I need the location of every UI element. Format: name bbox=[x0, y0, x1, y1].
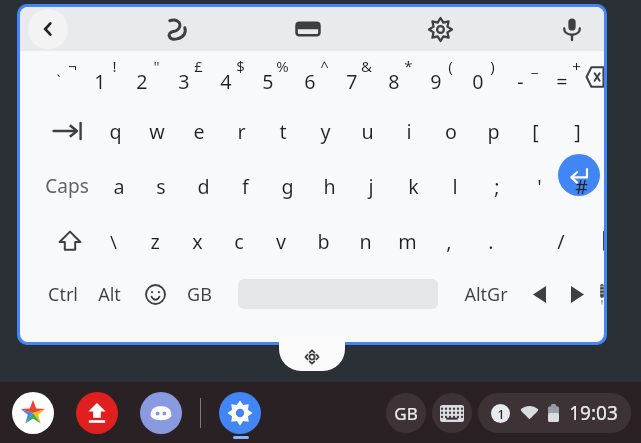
staticText: q bbox=[109, 118, 122, 145]
button[interactable]: Discord bbox=[140, 392, 182, 434]
staticText: u bbox=[361, 118, 374, 145]
button[interactable]: g bbox=[266, 159, 308, 213]
staticText: # bbox=[575, 173, 588, 200]
button[interactable]: Settings app bbox=[219, 392, 261, 434]
button[interactable]: ; bbox=[476, 159, 518, 213]
button[interactable]: Left bbox=[522, 277, 556, 311]
staticText: l bbox=[452, 173, 458, 200]
button[interactable]: ] bbox=[556, 103, 598, 159]
button[interactable]: Hide keyboard bbox=[600, 274, 604, 314]
button[interactable]: ) bbox=[460, 51, 502, 103]
button[interactable]: z bbox=[134, 213, 176, 269]
button[interactable]: Emoji bbox=[135, 274, 175, 314]
button[interactable]: Alt bbox=[94, 274, 125, 314]
button[interactable]: l bbox=[434, 159, 476, 213]
staticText: y bbox=[320, 118, 331, 145]
button[interactable]: ! bbox=[82, 51, 124, 103]
staticText: w bbox=[149, 118, 165, 145]
button[interactable]: q bbox=[94, 103, 136, 159]
button[interactable]: Settings bbox=[418, 7, 462, 51]
button[interactable]: w bbox=[136, 103, 178, 159]
button[interactable]: , bbox=[428, 213, 470, 269]
button[interactable]: Enter bbox=[558, 154, 600, 196]
button[interactable]: * bbox=[376, 51, 418, 103]
button[interactable]: Move keyboard bbox=[279, 337, 345, 371]
button[interactable]: Back bbox=[28, 9, 68, 49]
button[interactable]: o bbox=[430, 103, 472, 159]
staticText: + bbox=[572, 56, 581, 76]
staticText: Alt bbox=[98, 282, 121, 307]
button[interactable]: b bbox=[302, 213, 344, 269]
button[interactable]: i bbox=[388, 103, 430, 159]
button[interactable]: Backspace bbox=[586, 51, 604, 103]
button[interactable]: ( bbox=[418, 51, 460, 103]
button[interactable]: Right bbox=[560, 277, 594, 311]
button[interactable]: # bbox=[560, 159, 602, 213]
button[interactable]: & bbox=[334, 51, 376, 103]
staticText: - bbox=[517, 68, 524, 95]
button[interactable]: f bbox=[224, 159, 266, 213]
button[interactable]: Ctrl bbox=[44, 274, 82, 314]
button[interactable]: k bbox=[392, 159, 434, 213]
button[interactable]: " bbox=[124, 51, 166, 103]
staticText: & bbox=[361, 56, 372, 76]
staticText: 3 bbox=[178, 68, 190, 95]
button[interactable]: + bbox=[544, 51, 586, 103]
button[interactable]: Shift bbox=[48, 213, 92, 269]
button[interactable]: . bbox=[470, 213, 512, 269]
staticText: \ bbox=[110, 229, 117, 254]
button[interactable]: % bbox=[250, 51, 292, 103]
button[interactable]: GB bbox=[386, 393, 426, 433]
staticText: £ bbox=[194, 56, 203, 76]
button[interactable]: £ bbox=[166, 51, 208, 103]
button[interactable]: x bbox=[176, 213, 218, 269]
staticText: / bbox=[557, 228, 565, 255]
staticText: p bbox=[487, 118, 500, 145]
button[interactable]: s bbox=[140, 159, 182, 213]
button[interactable]: n bbox=[344, 213, 386, 269]
button[interactable]: Upload app bbox=[76, 392, 118, 434]
staticText: [ bbox=[532, 118, 539, 145]
button[interactable]: c bbox=[218, 213, 260, 269]
button[interactable]: ¬ bbox=[40, 51, 82, 103]
button[interactable]: Tab bbox=[42, 103, 94, 159]
staticText: f bbox=[242, 173, 249, 200]
button[interactable]: ^ bbox=[292, 51, 334, 103]
button[interactable]: _ bbox=[502, 51, 544, 103]
staticText: g bbox=[281, 173, 294, 200]
button[interactable]: AltGr bbox=[460, 274, 512, 314]
button[interactable]: m bbox=[386, 213, 428, 269]
button[interactable]: y bbox=[304, 103, 346, 159]
staticText: z bbox=[150, 228, 160, 255]
button[interactable]: 1 bbox=[478, 393, 631, 433]
button[interactable]: h bbox=[308, 159, 350, 213]
button[interactable]: a bbox=[98, 159, 140, 213]
button[interactable]: Caps bbox=[36, 159, 98, 213]
button[interactable]: $ bbox=[208, 51, 250, 103]
button[interactable]: [ bbox=[514, 103, 556, 159]
button[interactable]: u bbox=[346, 103, 388, 159]
button[interactable]: d bbox=[182, 159, 224, 213]
button[interactable]: e bbox=[178, 103, 220, 159]
button[interactable]: \ bbox=[92, 213, 134, 269]
button[interactable]: Voice input bbox=[550, 7, 594, 51]
button[interactable]: / bbox=[540, 213, 582, 269]
button[interactable]: Gallery app bbox=[12, 392, 54, 434]
button[interactable]: GB bbox=[183, 274, 216, 314]
staticText: 0 bbox=[472, 68, 484, 95]
staticText: ¬ bbox=[68, 56, 77, 76]
staticText: " bbox=[153, 56, 160, 76]
staticText: j bbox=[368, 173, 374, 200]
button[interactable]: t bbox=[262, 103, 304, 159]
button[interactable]: Handwriting bbox=[155, 7, 199, 51]
staticText: ' bbox=[537, 173, 542, 200]
button[interactable]: Keyboard bbox=[432, 393, 472, 433]
button[interactable]: ' bbox=[518, 159, 560, 213]
button[interactable]: v bbox=[260, 213, 302, 269]
button[interactable]: p bbox=[472, 103, 514, 159]
button[interactable]: Keyboard layout bbox=[286, 7, 330, 51]
button[interactable]: r bbox=[220, 103, 262, 159]
staticText: GB bbox=[394, 402, 418, 425]
button[interactable]: j bbox=[350, 159, 392, 213]
